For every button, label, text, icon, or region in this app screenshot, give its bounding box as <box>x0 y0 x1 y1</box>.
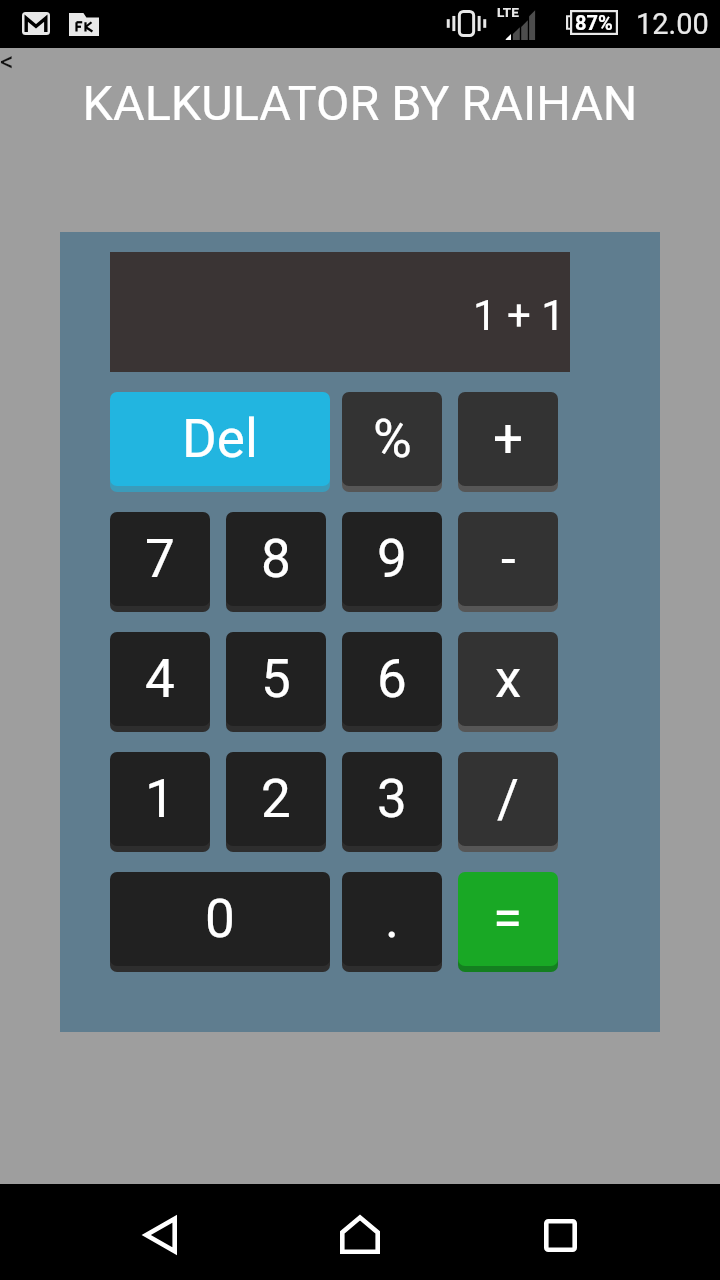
button[interactable]: % <box>342 392 442 486</box>
button[interactable]: Back <box>100 1184 220 1280</box>
staticText: 1 <box>145 768 175 830</box>
button[interactable]: = <box>458 872 558 966</box>
button[interactable]: - <box>458 512 558 606</box>
button[interactable]: 6 <box>342 632 442 726</box>
button[interactable]: 3 <box>342 752 442 846</box>
staticText: 0 <box>205 888 235 950</box>
staticText: 1 + 1 <box>473 291 565 340</box>
staticText: 87% <box>575 11 613 34</box>
button[interactable]: / <box>458 752 558 846</box>
staticText: - <box>501 528 516 590</box>
button[interactable]: Home <box>300 1184 420 1280</box>
button[interactable]: 2 <box>226 752 326 846</box>
button[interactable]: x <box>458 632 558 726</box>
staticText: = <box>493 888 523 950</box>
staticText: 7 <box>145 528 175 590</box>
staticText: . <box>385 888 399 950</box>
staticText: 12.00 <box>636 7 709 41</box>
staticText: % <box>373 408 412 470</box>
staticText: 2 <box>261 768 291 830</box>
staticText: x <box>495 648 522 710</box>
button[interactable]: + <box>458 392 558 486</box>
button[interactable]: Recent apps <box>500 1184 620 1280</box>
staticText: LTE <box>497 4 519 20</box>
button[interactable]: 5 <box>226 632 326 726</box>
button[interactable]: . <box>342 872 442 966</box>
staticText: Del <box>182 408 258 470</box>
staticText: / <box>497 768 519 830</box>
button[interactable]: Del <box>110 392 330 486</box>
staticText: < <box>0 46 14 72</box>
button[interactable]: 1 <box>110 752 210 846</box>
staticText: 4 <box>145 648 175 710</box>
staticText: KALKULATOR BY RAIHAN <box>0 75 720 132</box>
button[interactable]: 8 <box>226 512 326 606</box>
button[interactable]: 0 <box>110 872 330 966</box>
button[interactable]: Back <box>0 48 18 74</box>
staticText: + <box>493 408 524 470</box>
button[interactable]: 9 <box>342 512 442 606</box>
staticText: 8 <box>261 528 291 590</box>
button[interactable]: 4 <box>110 632 210 726</box>
staticText: 3 <box>377 768 407 830</box>
button[interactable]: 7 <box>110 512 210 606</box>
staticText: 9 <box>377 528 407 590</box>
staticText: 5 <box>261 648 291 710</box>
staticText: 6 <box>377 648 407 710</box>
